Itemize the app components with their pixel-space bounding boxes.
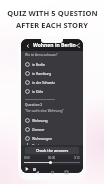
- staticText: Wohnung: [32, 118, 48, 123]
- staticText: in der Schweiz: [32, 80, 55, 85]
- staticText: in Berlin: [32, 62, 46, 67]
- button[interactable]: Play: [24, 166, 30, 172]
- button[interactable]: Home: [49, 169, 56, 176]
- staticText: "Sie sucht eine Wohnung": [25, 109, 64, 113]
- button[interactable]: in Berlin: [25, 60, 79, 69]
- button[interactable]: Wohnung: [25, 116, 79, 125]
- staticText: Wohnen in Berlin: [33, 42, 76, 49]
- button[interactable]: Seek: [24, 161, 80, 164]
- staticText: Question 2: [25, 103, 43, 107]
- button[interactable]: Back: [24, 42, 31, 49]
- button[interactable]: in Köln: [25, 87, 79, 96]
- button[interactable]: Check the answers: [25, 147, 79, 154]
- button[interactable]: Garten: [25, 143, 79, 145]
- button[interactable]: Share: [76, 42, 80, 49]
- button[interactable]: Zimmer: [25, 125, 79, 134]
- staticText: 00:00: [48, 156, 56, 160]
- staticText: 3:12: [74, 156, 80, 160]
- button[interactable]: Stop: [32, 167, 37, 172]
- staticText: Garten: [32, 143, 44, 145]
- staticText: in Hamburg: [32, 71, 52, 76]
- staticText: Zimmer: [32, 127, 45, 132]
- button[interactable]: Back: [34, 169, 41, 176]
- staticText: QUIZ WITH 5 QUESTION: [7, 8, 98, 18]
- button[interactable]: in der Schweiz: [25, 78, 79, 87]
- button[interactable]: in Hamburg: [25, 69, 79, 78]
- button[interactable]: Recents: [63, 169, 70, 176]
- staticText: Wo ist Anna zuhause?: [25, 53, 58, 57]
- staticText: AFTER EACH STORY: [16, 20, 88, 30]
- staticText: Check the answers: [36, 148, 69, 153]
- staticText: in Köln: [32, 89, 43, 94]
- staticText: 0:00: [24, 156, 30, 160]
- button[interactable]: Wohnwagen: [25, 134, 79, 143]
- staticText: Wohnwagen: [32, 136, 52, 141]
